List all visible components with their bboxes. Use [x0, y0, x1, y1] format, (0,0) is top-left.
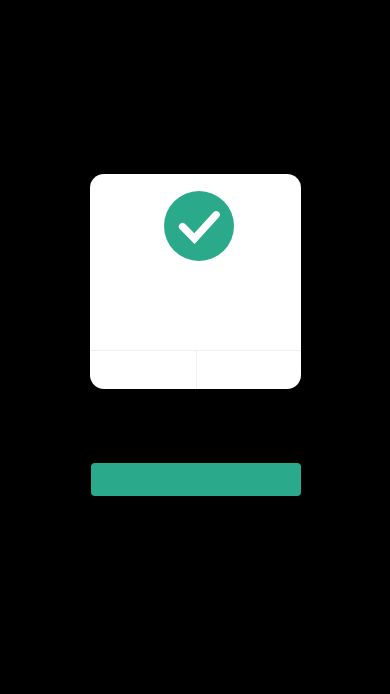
- button[interactable]: Continue: [91, 463, 301, 496]
- button[interactable]: [90, 351, 196, 389]
- other: Success: [164, 191, 234, 261]
- button[interactable]: [197, 351, 301, 389]
